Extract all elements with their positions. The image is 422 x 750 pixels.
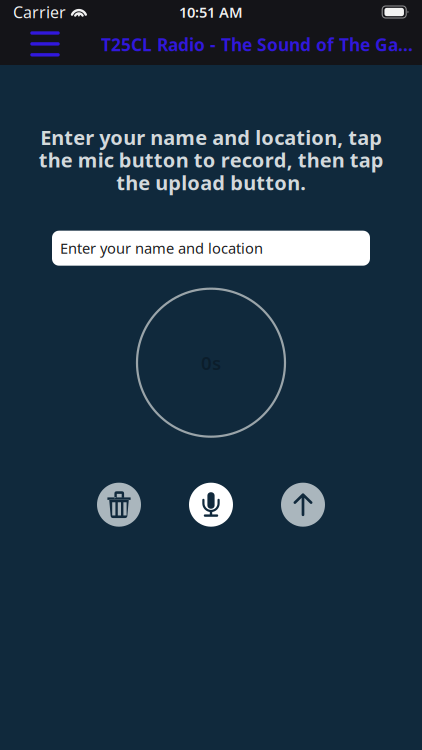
button[interactable]: Delete recording	[97, 483, 141, 527]
button[interactable]: Record	[189, 483, 233, 527]
staticText: 10:51 AM	[179, 2, 243, 22]
staticText: Enter your name and location, tap the mi…	[38, 124, 383, 196]
staticText: T25CL Radio - The Sound of The Ga...	[101, 33, 413, 56]
staticText: Carrier	[13, 1, 66, 23]
button[interactable]: Upload recording	[281, 483, 325, 527]
button[interactable]: Menu	[23, 24, 67, 65]
staticText: 0s	[201, 350, 221, 375]
staticText: Enter your name and location	[60, 238, 263, 258]
